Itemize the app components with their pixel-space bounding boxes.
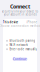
- button[interactable]: Continue: [12, 57, 27, 61]
- staticText: your account in seconds: [3, 13, 36, 16]
- staticText: iPhone: [26, 20, 37, 24]
- staticText: Bluetooth pairing: [9, 39, 35, 42]
- staticText: Choose a connection method: [0, 24, 40, 28]
- button[interactable]: Enter code manually: [6, 47, 34, 51]
- button[interactable]: Wi-Fi network: [6, 43, 34, 47]
- button[interactable]: Bluetooth pairing: [6, 39, 34, 43]
- staticText: Connect: [10, 3, 30, 10]
- staticText: Continue: [13, 57, 27, 61]
- staticText: This device: [2, 20, 18, 24]
- staticText: Enter code manually: [9, 47, 36, 51]
- staticText: Wi-Fi network: [9, 43, 27, 47]
- staticText: Securely link your device to: [1, 10, 38, 13]
